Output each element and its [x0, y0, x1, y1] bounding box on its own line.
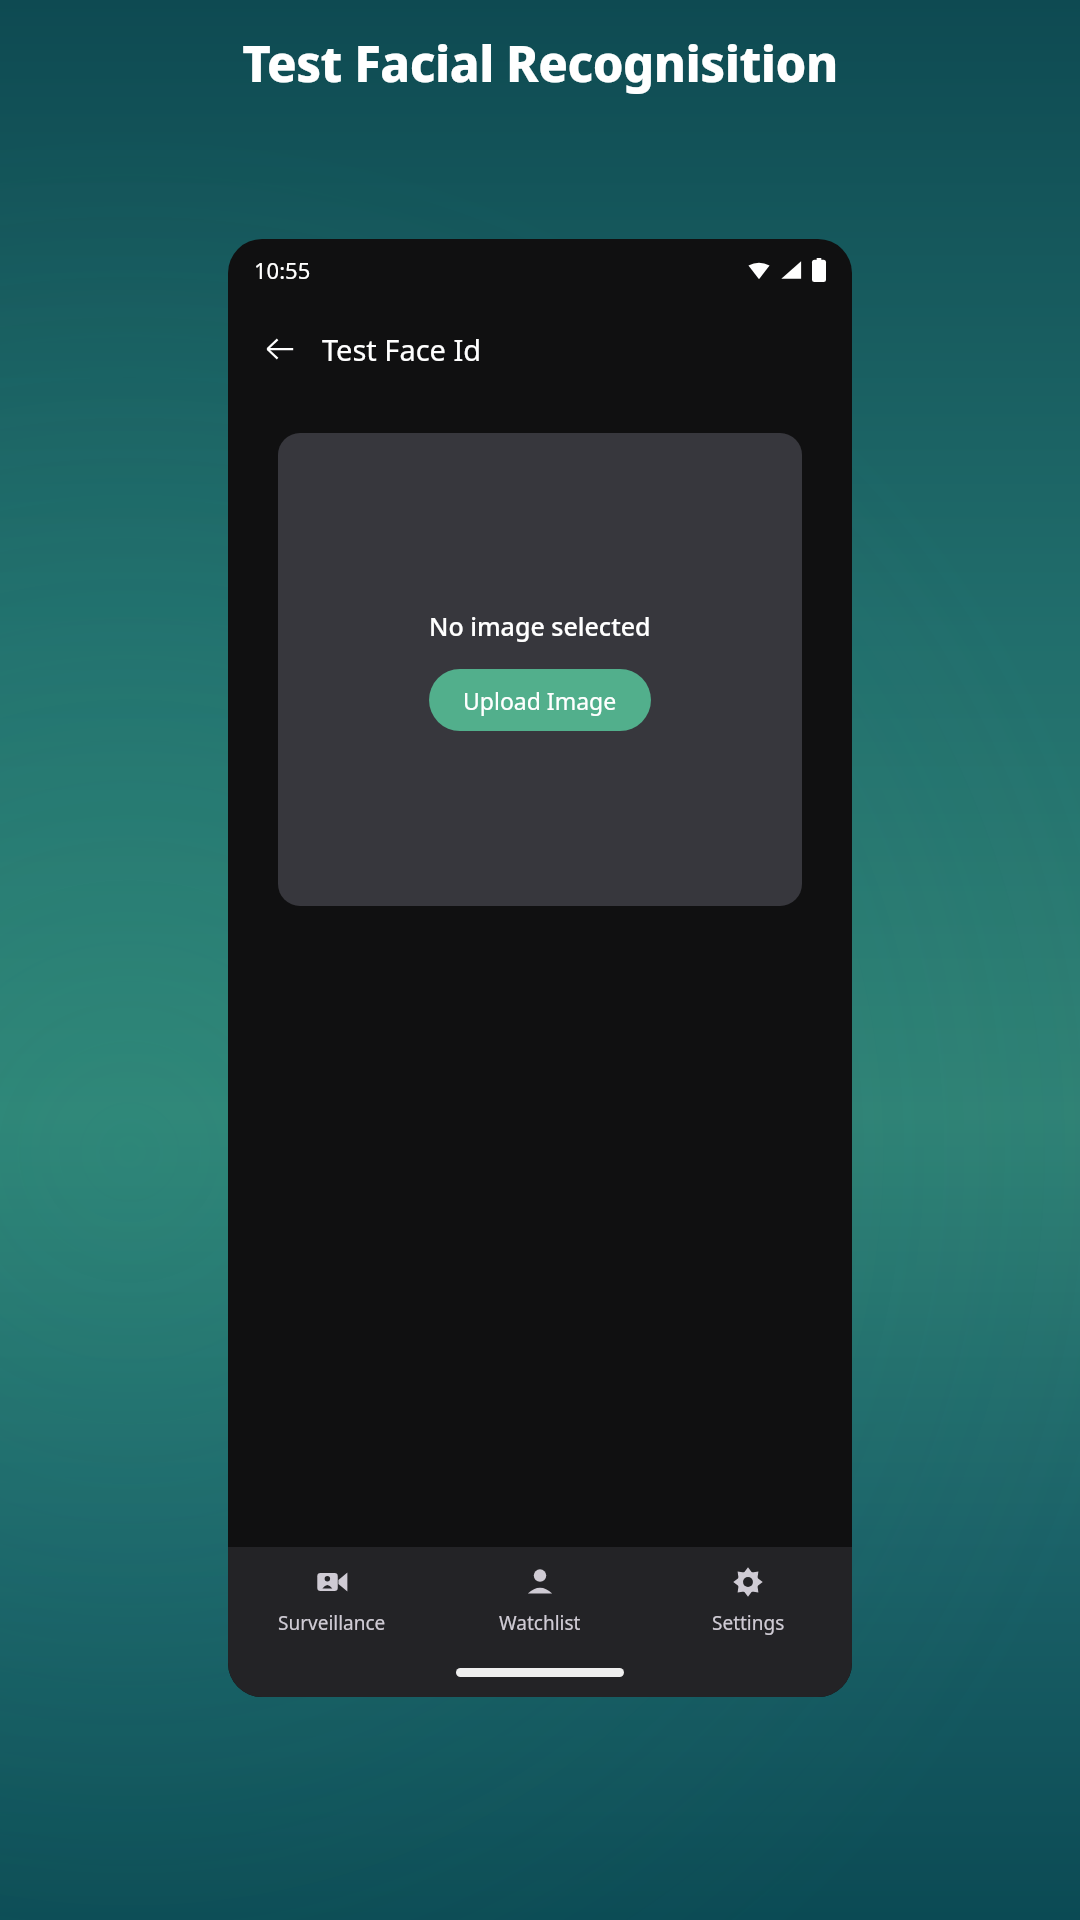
staticText: No image selected	[429, 609, 651, 643]
button[interactable]: Watchlist	[436, 1560, 644, 1642]
button[interactable]: Settings	[644, 1560, 852, 1642]
button[interactable]: Upload Image	[429, 669, 651, 731]
staticText: Test Facial Recognisition	[242, 30, 838, 97]
button[interactable]: Back	[252, 321, 308, 377]
button[interactable]: No image selected	[278, 433, 802, 906]
staticText: Test Face Id	[322, 330, 482, 369]
staticText: Surveillance	[278, 1610, 386, 1636]
staticText: Settings	[712, 1610, 785, 1636]
staticText: 10:55	[254, 255, 311, 285]
staticText: Watchlist	[499, 1610, 581, 1636]
staticText: Upload Image	[463, 685, 617, 716]
button[interactable]: Surveillance	[228, 1560, 436, 1642]
